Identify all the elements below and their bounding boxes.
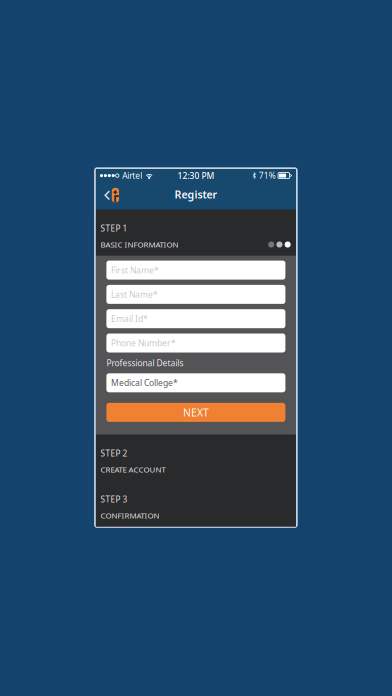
staticText: BASIC INFORMATION	[100, 239, 178, 250]
button[interactable]: Back	[96, 182, 125, 210]
staticText: First Name*	[111, 264, 159, 276]
button[interactable]: NEXT	[106, 403, 285, 422]
staticText: Register	[174, 187, 217, 201]
button[interactable]: First Name*	[106, 261, 285, 280]
button[interactable]: Email Id*	[106, 309, 285, 328]
staticText: Airtel	[122, 170, 142, 181]
staticText: NEXT	[183, 405, 209, 419]
button[interactable]: Phone Number*	[106, 333, 285, 352]
staticText: Last Name*	[111, 289, 158, 300]
staticText: 12:30 PM	[177, 170, 214, 181]
staticText: CONFIRMATION	[100, 510, 159, 521]
staticText: Email Id*	[111, 313, 148, 324]
staticText: Phone Number*	[111, 337, 176, 349]
button[interactable]: Last Name*	[106, 285, 285, 304]
staticText: Professional Details	[106, 357, 183, 369]
staticText: STEP 1	[100, 223, 127, 234]
staticText: STEP 2	[100, 448, 127, 459]
staticText: STEP 3	[100, 494, 127, 505]
staticText: Medical College*	[111, 377, 178, 389]
staticText: 71%	[259, 170, 276, 181]
button[interactable]: Medical College*	[106, 373, 285, 392]
staticText: CREATE ACCOUNT	[100, 464, 165, 475]
